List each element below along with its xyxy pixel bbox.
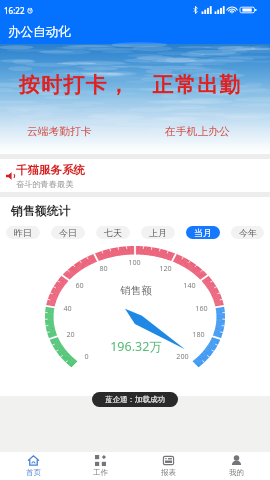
- staticText: 140: [183, 280, 196, 290]
- button[interactable]: 今年: [231, 226, 264, 239]
- staticText: 160: [195, 303, 208, 313]
- staticText: 工作: [93, 468, 108, 477]
- staticText: 在手机上办公: [165, 125, 230, 139]
- staticText: 销售额: [120, 284, 152, 297]
- staticText: 我的: [229, 468, 244, 477]
- staticText: 千猫服务系统: [16, 163, 85, 177]
- staticText: 七天: [104, 227, 122, 238]
- staticText: 昨日: [14, 227, 32, 238]
- staticText: 0: [84, 351, 89, 361]
- staticText: 今年: [239, 227, 257, 238]
- staticText: 今日: [59, 227, 77, 238]
- staticText: 20: [66, 329, 75, 339]
- staticText: 蓝企通：加载成功: [105, 395, 165, 404]
- button[interactable]: 昨日: [6, 226, 40, 239]
- staticText: 16:22: [4, 5, 25, 16]
- staticText: 60: [75, 280, 84, 290]
- staticText: 按时打卡， 正常出勤: [18, 70, 241, 99]
- staticText: 当月: [194, 227, 212, 238]
- staticText: 100: [128, 257, 141, 267]
- staticText: 上月: [149, 227, 167, 238]
- button[interactable]: 首页: [0, 452, 67, 480]
- staticText: 报表: [161, 468, 176, 477]
- button[interactable]: 当月: [186, 226, 220, 239]
- staticText: 180: [192, 329, 205, 339]
- staticText: 办公自动化: [8, 24, 71, 40]
- staticText: 首页: [26, 468, 41, 477]
- staticText: 奋斗的青春最美: [16, 179, 74, 189]
- staticText: 80: [99, 263, 108, 273]
- staticText: 120: [159, 263, 172, 273]
- button[interactable]: 报表: [134, 452, 202, 480]
- button[interactable]: 上月: [141, 226, 175, 239]
- staticText: 200: [176, 351, 189, 361]
- button[interactable]: 千猫服务系统: [0, 159, 270, 192]
- button[interactable]: 我的: [202, 452, 270, 480]
- button[interactable]: 今日: [51, 226, 85, 239]
- staticText: 40: [63, 303, 72, 313]
- staticText: 销售额统计: [11, 204, 70, 219]
- staticText: 196.32万: [110, 338, 162, 355]
- button[interactable]: 七天: [96, 226, 130, 239]
- staticText: 云端考勤打卡: [27, 125, 92, 139]
- button[interactable]: 工作: [67, 452, 134, 480]
